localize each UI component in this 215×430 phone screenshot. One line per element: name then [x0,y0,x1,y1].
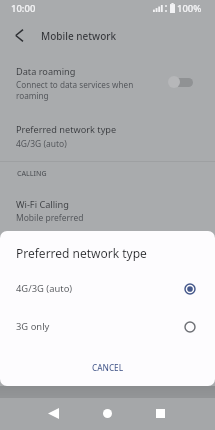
staticText: Connect to data services when roaming [16,79,134,101]
staticText: CALLING [17,169,47,179]
staticText: 100% [177,2,202,15]
staticText: 3G only [16,320,50,333]
staticText: 10:00 [11,2,36,15]
staticText: Data roaming [16,65,76,78]
staticText: CANCEL [92,362,124,373]
button[interactable]: 4G/3G (auto) [0,268,215,306]
button[interactable]: Preferred network type [0,112,215,154]
staticText: Wi-Fi Calling [16,198,69,211]
button[interactable]: Home [92,398,122,428]
staticText: Preferred network type [16,245,147,261]
button[interactable]: CANCEL [84,357,132,378]
staticText: 4G/3G (auto) [16,138,67,150]
button[interactable]: Recent apps [145,398,175,428]
button[interactable]: Wi-Fi Calling [0,188,215,230]
button[interactable]: 3G only [0,306,215,344]
button[interactable]: Back [38,398,68,428]
staticText: Preferred network type [16,123,117,136]
staticText: 4G/3G (auto) [16,282,73,295]
staticText: Mobile preferred [16,212,84,224]
button[interactable]: Data roaming [0,57,215,105]
button[interactable]: Navigate up [5,21,33,49]
staticText: Mobile network [41,29,117,43]
